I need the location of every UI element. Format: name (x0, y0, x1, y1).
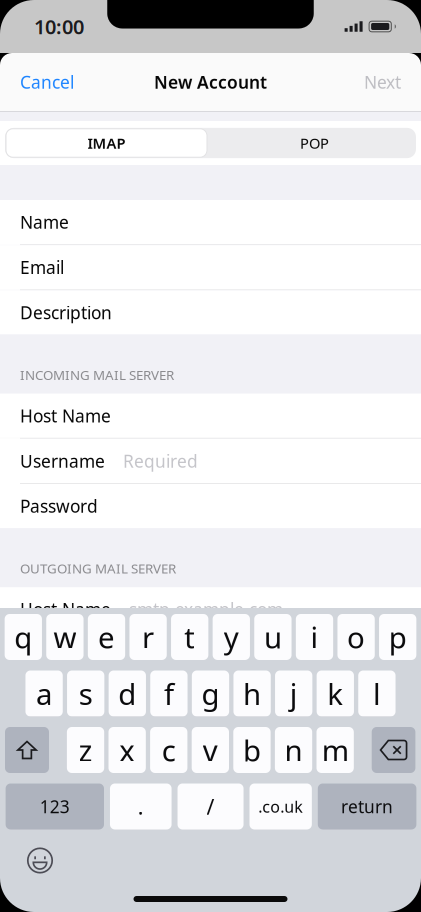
staticText: r (142, 617, 154, 656)
button[interactable]: Description (0, 290, 421, 335)
button[interactable]: n (275, 727, 312, 773)
staticText: l (373, 674, 381, 713)
button[interactable]: e (88, 614, 125, 660)
staticText: y (224, 617, 239, 656)
button[interactable]: r (129, 614, 167, 660)
button[interactable]: POP (213, 128, 416, 158)
button[interactable]: Password (0, 678, 421, 722)
staticText: e (98, 617, 115, 656)
staticText: p (389, 617, 407, 656)
button[interactable]: 123 (6, 783, 104, 829)
button[interactable]: IMAP (5, 129, 207, 157)
button[interactable]: m (316, 727, 354, 773)
staticText: Email (20, 256, 64, 279)
staticText: h (243, 674, 261, 713)
staticText: f (164, 674, 174, 713)
staticText: Password (20, 688, 98, 711)
staticText: w (53, 617, 76, 656)
staticText: o (347, 617, 365, 656)
button[interactable]: f (150, 670, 187, 716)
staticText: return (341, 795, 393, 818)
staticText: Host Name (20, 404, 111, 427)
button[interactable]: l (358, 670, 395, 716)
staticText: g (201, 674, 219, 713)
button[interactable]: Delete (372, 727, 415, 773)
button[interactable]: d (109, 670, 146, 716)
button[interactable]: .co.uk (249, 783, 312, 829)
button[interactable]: o (337, 614, 375, 660)
staticText: j (290, 674, 298, 713)
staticText: 10:00 (34, 13, 84, 40)
button[interactable]: z (67, 727, 104, 773)
button[interactable]: u (254, 614, 291, 660)
staticText: i (310, 617, 318, 656)
staticText: 123 (40, 795, 70, 818)
button[interactable]: k (317, 670, 354, 716)
staticText: New Account (154, 70, 267, 93)
staticText: a (36, 674, 52, 713)
button[interactable]: s (67, 670, 104, 716)
button[interactable]: return (318, 783, 416, 829)
staticText: Name (20, 211, 69, 234)
button[interactable]: i (296, 614, 333, 660)
button[interactable]: b (233, 727, 271, 773)
staticText: b (243, 730, 261, 769)
button[interactable]: Emoji keyboard (0, 829, 53, 879)
button[interactable]: h (233, 670, 271, 716)
staticText: q (14, 617, 32, 656)
staticText: d (118, 674, 136, 713)
staticText: k (327, 674, 343, 713)
staticText: Password (20, 495, 98, 518)
button[interactable]: y (213, 614, 250, 660)
staticText: c (162, 730, 176, 769)
staticText: Next (364, 70, 401, 93)
staticText: smtp.example.com (129, 598, 283, 621)
button[interactable]: w (46, 614, 83, 660)
button[interactable]: Host Name (0, 394, 421, 438)
staticText: / (206, 792, 214, 821)
button[interactable]: v (192, 727, 229, 773)
staticText: Host Name (20, 598, 111, 621)
staticText: . (138, 792, 144, 821)
button[interactable]: / (177, 783, 243, 829)
staticText: .co.uk (258, 796, 303, 817)
button[interactable]: g (192, 670, 229, 716)
staticText: m (322, 730, 349, 769)
staticText: u (264, 617, 282, 656)
staticText: Username (20, 449, 105, 472)
button[interactable]: c (150, 727, 187, 773)
staticText: Required (123, 449, 198, 472)
button[interactable]: Password (0, 484, 421, 528)
staticText: n (284, 730, 302, 769)
button[interactable]: x (108, 727, 146, 773)
staticText: Optional (130, 643, 200, 666)
staticText: v (203, 730, 218, 769)
staticText: OUTGOING MAIL SERVER (20, 559, 176, 577)
button[interactable]: Username (0, 439, 421, 483)
button[interactable]: Email (0, 245, 421, 289)
staticText: t (184, 617, 195, 656)
staticText: s (79, 674, 93, 713)
button[interactable]: t (171, 614, 208, 660)
button[interactable]: q (5, 614, 42, 660)
staticText: Cancel (20, 70, 74, 93)
staticText: Description (20, 301, 112, 324)
staticText: x (119, 730, 135, 769)
staticText: Optional (116, 688, 186, 711)
staticText: INCOMING MAIL SERVER (20, 366, 174, 384)
button[interactable]: Next (350, 56, 421, 107)
button[interactable]: p (379, 614, 416, 660)
button[interactable]: j (275, 670, 312, 716)
button[interactable]: Host Name (0, 587, 421, 631)
button[interactable]: Name (0, 200, 421, 244)
button[interactable]: Shift (5, 727, 49, 773)
staticText: User Name (20, 643, 112, 666)
staticText: z (78, 730, 92, 769)
button[interactable]: . (110, 783, 172, 829)
button[interactable]: User Name (0, 632, 421, 677)
staticText: IMAP (87, 133, 125, 153)
button[interactable]: a (25, 670, 63, 716)
button[interactable]: Cancel (0, 56, 88, 107)
staticText: POP (300, 133, 329, 153)
